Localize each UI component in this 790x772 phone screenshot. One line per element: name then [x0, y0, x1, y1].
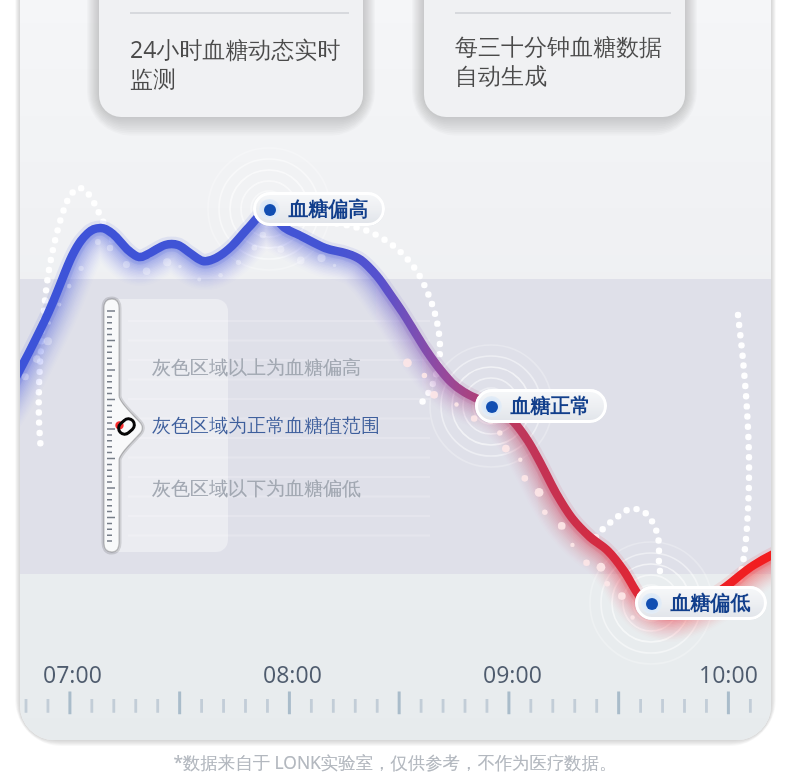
staticText: 每三十分钟血糖数据 自动生成 — [455, 33, 662, 90]
staticText: 09:00 — [483, 658, 542, 689]
staticText: 血糖偏高 — [288, 197, 368, 222]
staticText: *数据来自于 LONK实验室，仅供参考，不作为医疗数据。 — [173, 750, 617, 772]
button[interactable]: 血糖偏低 — [641, 586, 767, 620]
staticText: 灰色区域以下为血糖偏低 — [152, 477, 361, 501]
staticText: 灰色区域为正常血糖值范围 — [152, 414, 380, 438]
staticText: 血糖偏低 — [670, 591, 750, 616]
staticText: 08:00 — [263, 658, 322, 689]
button[interactable]: 血糖偏高 — [259, 192, 385, 226]
button[interactable]: 每三十分钟血糖数据 自动生成 — [424, 0, 685, 117]
button[interactable]: 24小时血糖动态实时 监测 — [99, 0, 363, 117]
staticText: 07:00 — [43, 658, 102, 689]
staticText: 血糖正常 — [510, 394, 590, 419]
staticText: 10:00 — [699, 658, 758, 689]
button[interactable]: 血糖正常 — [481, 389, 607, 423]
staticText: 灰色区域以上为血糖偏高 — [152, 356, 361, 380]
staticText: 24小时血糖动态实时 监测 — [130, 33, 341, 93]
